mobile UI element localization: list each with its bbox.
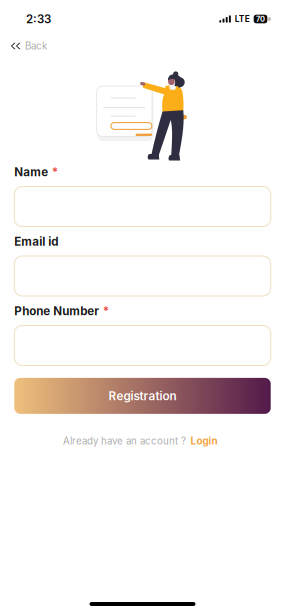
staticText: Back [25, 40, 47, 52]
staticText: Already have an account ? [63, 435, 186, 447]
staticText: Login [190, 435, 217, 447]
button[interactable]: Registration [14, 378, 271, 414]
staticText: 2:33 [26, 12, 51, 26]
staticText: Phone Number [14, 304, 99, 318]
staticText: LTE [235, 14, 250, 24]
staticText: 70 [256, 14, 265, 23]
staticText: Registration [108, 389, 176, 403]
staticText: Name [14, 165, 48, 179]
staticText: Email id [14, 234, 58, 248]
button[interactable]: Login [186, 432, 222, 450]
staticText: * [103, 304, 109, 318]
button[interactable]: Back [0, 36, 55, 56]
staticText: * [52, 165, 58, 179]
